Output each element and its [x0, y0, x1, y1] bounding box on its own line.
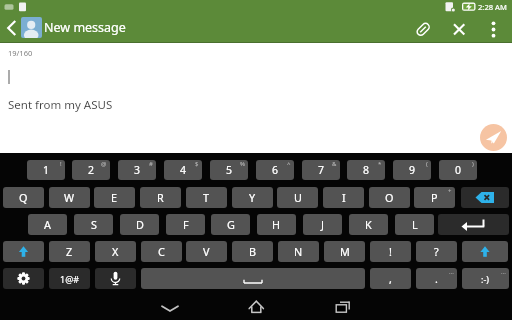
button[interactable]: N	[278, 241, 319, 262]
button[interactable]	[3, 268, 44, 289]
button[interactable]: 7	[302, 160, 340, 180]
button[interactable]: :-)	[462, 268, 509, 289]
button[interactable]: V	[186, 241, 227, 262]
button[interactable]: M	[324, 241, 365, 262]
button[interactable]	[462, 241, 508, 262]
button[interactable]: O	[369, 187, 410, 208]
button[interactable]: Z	[49, 241, 90, 262]
button[interactable]: !	[370, 241, 411, 262]
staticText: 4	[180, 163, 187, 177]
button[interactable]: C	[141, 241, 182, 262]
button[interactable]: P	[414, 187, 455, 208]
staticText: S	[91, 217, 97, 232]
staticText: M	[340, 244, 350, 259]
button[interactable]: J	[303, 214, 342, 235]
button[interactable]: B	[232, 241, 273, 262]
button[interactable]: 1@#	[49, 268, 90, 289]
button[interactable]: ,	[370, 268, 411, 289]
button[interactable]	[438, 214, 509, 235]
staticText: &	[332, 160, 337, 168]
button[interactable]	[408, 13, 439, 43]
button[interactable]	[95, 268, 136, 289]
button[interactable]	[314, 294, 372, 320]
button[interactable]	[0, 12, 21, 43]
staticText: (	[426, 160, 428, 168]
button[interactable]: .	[416, 268, 457, 289]
staticText: W	[64, 190, 75, 205]
staticText: 1	[43, 163, 50, 177]
button[interactable]: 1	[27, 160, 65, 180]
button[interactable]: 6	[256, 160, 294, 180]
staticText: .	[435, 271, 438, 286]
button[interactable]: L	[395, 214, 434, 235]
staticText: New message	[44, 19, 126, 36]
staticText: D	[136, 217, 144, 232]
staticText: 2	[88, 163, 95, 177]
button[interactable]	[479, 13, 509, 43]
button[interactable]: 5	[210, 160, 248, 180]
staticText: !	[389, 244, 392, 259]
button[interactable]: 4	[164, 160, 202, 180]
staticText: 2:28 AM	[478, 2, 507, 12]
button[interactable]: 3	[118, 160, 156, 180]
staticText: Q	[19, 190, 28, 205]
button[interactable]: I	[323, 187, 364, 208]
staticText: !	[60, 160, 62, 168]
button[interactable]: 2	[72, 160, 110, 180]
button[interactable]: Y	[232, 187, 273, 208]
button[interactable]	[21, 17, 42, 38]
staticText: U	[294, 190, 302, 205]
button[interactable]: T	[186, 187, 227, 208]
staticText: %	[240, 160, 245, 168]
staticText: 7	[318, 163, 325, 177]
button[interactable]: 0	[439, 160, 477, 180]
staticText: N	[294, 244, 303, 259]
staticText: ^	[287, 160, 291, 168]
staticText: *	[378, 160, 382, 168]
button[interactable]	[3, 241, 44, 262]
staticText: C	[158, 244, 165, 259]
button[interactable]: F	[166, 214, 205, 235]
staticText: 1@#	[60, 273, 80, 285]
button[interactable]	[444, 13, 475, 43]
staticText: E	[111, 190, 118, 205]
button[interactable]	[140, 294, 198, 320]
button[interactable]: E	[94, 187, 135, 208]
button[interactable]	[141, 268, 365, 289]
button[interactable]: K	[349, 214, 388, 235]
staticText: V	[203, 244, 210, 259]
button[interactable]	[226, 294, 284, 320]
button[interactable]	[0, 43, 512, 153]
button[interactable]: X	[95, 241, 136, 262]
button[interactable]: A	[28, 214, 67, 235]
staticText: B	[249, 244, 257, 259]
button[interactable]: 8	[347, 160, 385, 180]
staticText: P	[431, 190, 438, 205]
staticText: )	[472, 160, 474, 168]
button[interactable]: Q	[3, 187, 44, 208]
button[interactable]: G	[211, 214, 250, 235]
button[interactable]: 9	[393, 160, 431, 180]
staticText: L	[412, 217, 418, 232]
button[interactable]: S	[74, 214, 113, 235]
staticText: @	[101, 160, 107, 168]
button[interactable]: D	[120, 214, 159, 235]
staticText: O	[385, 190, 394, 205]
staticText: Y	[249, 190, 256, 205]
button[interactable]: ?	[416, 241, 457, 262]
button[interactable]: H	[257, 214, 296, 235]
staticText: $	[195, 160, 199, 168]
button[interactable]: W	[49, 187, 90, 208]
staticText: K	[365, 217, 372, 232]
staticText: 19/160	[8, 48, 33, 58]
staticText: +	[448, 187, 452, 195]
staticText: X	[112, 244, 119, 259]
button[interactable]	[461, 187, 509, 208]
staticText: ,	[389, 271, 392, 286]
staticText: T	[203, 190, 210, 205]
button[interactable]: U	[277, 187, 318, 208]
staticText: ...	[449, 268, 454, 276]
button[interactable]: R	[140, 187, 181, 208]
button[interactable]	[480, 124, 507, 151]
staticText: Sent from my ASUS	[8, 97, 113, 113]
